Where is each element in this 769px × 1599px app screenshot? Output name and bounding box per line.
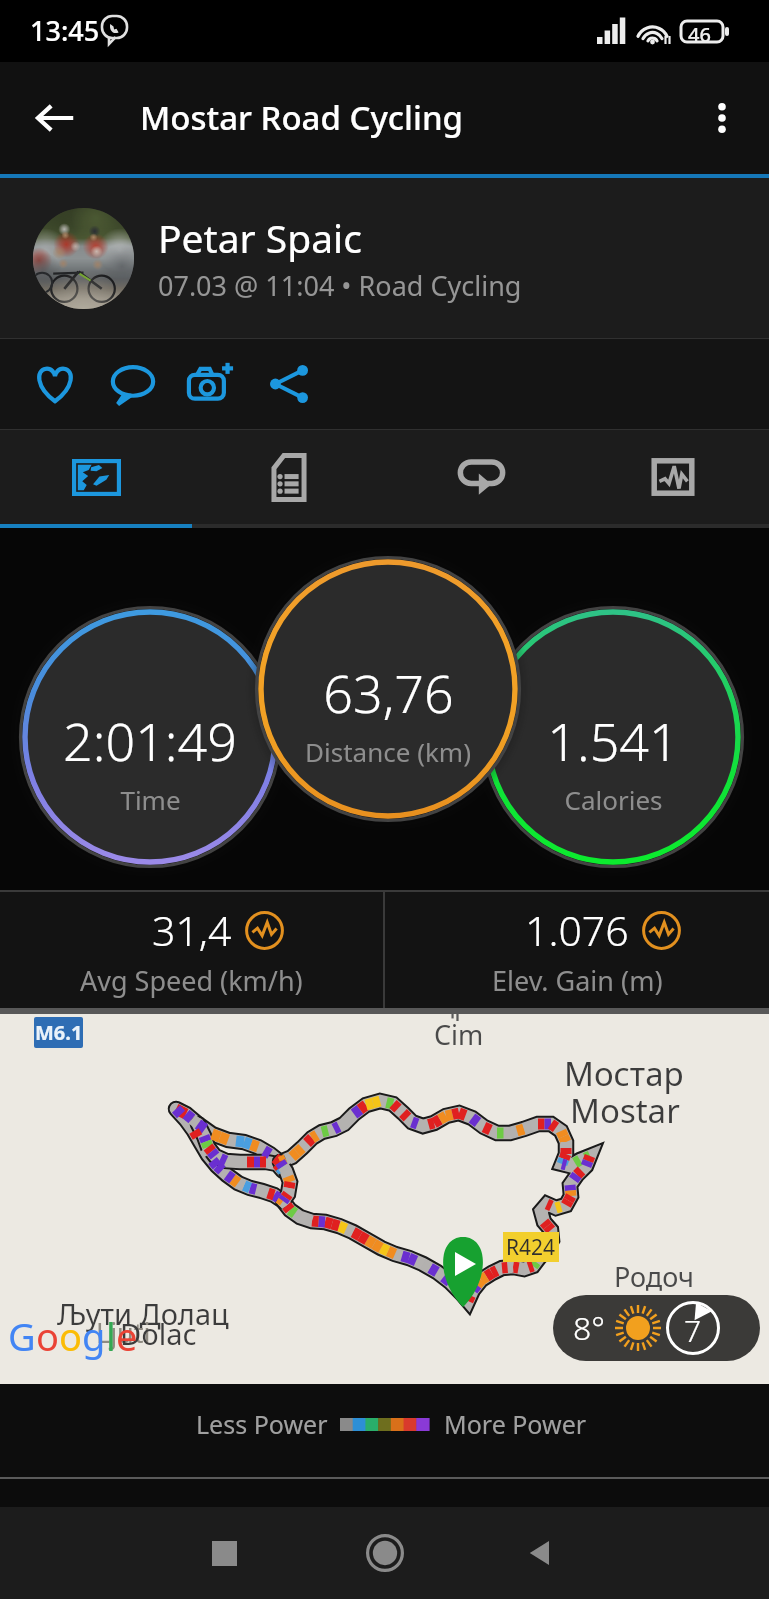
button[interactable]: Back — [501, 1514, 579, 1592]
staticText: Мостар — [564, 1051, 684, 1096]
staticText: 13:45 — [30, 12, 100, 49]
staticText: l — [106, 1310, 116, 1362]
staticText: Mostar — [570, 1088, 680, 1133]
staticText: Petar Spaic — [158, 211, 362, 264]
staticText: o — [59, 1310, 82, 1362]
button[interactable]: 31,4 — [0, 892, 383, 1008]
staticText: More Power — [444, 1407, 587, 1441]
staticText: Mostar Road Cycling — [140, 95, 464, 140]
staticText: 2:01:49 — [63, 705, 237, 776]
staticText: 31,4 — [152, 902, 232, 958]
staticText: Црни — [434, 1014, 504, 1022]
staticText: R424 — [506, 1233, 556, 1262]
staticText: Ljuti — [96, 1314, 151, 1351]
staticText: Cim — [434, 1016, 484, 1053]
staticText: 07.03 @ 11:04 • Road Cycling — [158, 267, 522, 304]
button[interactable]: Home — [346, 1514, 424, 1592]
button[interactable]: Recents — [185, 1514, 263, 1592]
button[interactable]: Details — [193, 430, 385, 524]
staticText: Љути Долац — [57, 1294, 229, 1333]
button[interactable]: 1.076 — [385, 892, 769, 1008]
button[interactable]: Like — [16, 345, 94, 423]
button[interactable]: Share — [250, 345, 328, 423]
staticText: Родоч — [614, 1258, 694, 1295]
button[interactable]: Back — [22, 85, 88, 151]
staticText: 7 — [684, 1310, 702, 1351]
staticText: 1.076 — [525, 902, 629, 958]
staticText: Calories — [564, 782, 663, 817]
button[interactable]: Laps — [385, 430, 577, 524]
staticText: g — [82, 1310, 106, 1362]
staticText: G — [8, 1310, 36, 1362]
staticText: Time — [120, 782, 181, 817]
button[interactable]: Add photo — [172, 345, 250, 423]
staticText: 63,76 — [323, 657, 454, 728]
button[interactable]: Map — [0, 430, 193, 524]
staticText: Distance (km) — [305, 734, 471, 769]
staticText: 8° — [573, 1306, 605, 1350]
staticText: Родоћ — [620, 1290, 702, 1327]
staticText: Less Power — [196, 1407, 328, 1441]
button[interactable]: Charts — [577, 430, 769, 524]
staticText: e — [116, 1310, 138, 1362]
staticText: M6.1 — [35, 1019, 83, 1046]
button[interactable]: More options — [691, 87, 753, 149]
button[interactable]: Weather — [553, 1295, 760, 1361]
staticText: 46 — [688, 21, 711, 48]
staticText: Dolac — [120, 1314, 197, 1353]
button[interactable]: Petar Spaic — [0, 178, 769, 338]
button[interactable]: Comment — [94, 345, 172, 423]
staticText: 1.541 — [547, 705, 679, 776]
staticText: Avg Speed (km/h) — [80, 962, 303, 999]
staticText: o — [36, 1310, 59, 1362]
staticText: Elev. Gain (m) — [492, 962, 663, 999]
